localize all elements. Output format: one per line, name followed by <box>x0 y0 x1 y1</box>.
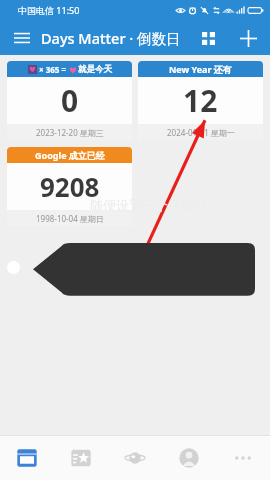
button[interactable]: Grid view <box>193 23 223 53</box>
staticText: 9208 <box>40 169 100 204</box>
button[interactable]: Google 成立已经 <box>7 147 132 226</box>
staticText: × 365 = <box>39 64 69 75</box>
button[interactable]: Menu <box>8 24 36 52</box>
staticText: 2023-12-20 星期三 <box>36 127 104 138</box>
staticText: 12 <box>183 80 218 121</box>
button[interactable]: More <box>216 436 270 480</box>
staticText: New Year 还有 <box>169 63 232 75</box>
button[interactable]: Calendar <box>0 436 54 480</box>
staticText: 随便设置一个目标日 <box>90 197 207 213</box>
staticText: 中国电信 11:50 <box>18 4 80 16</box>
staticText: Days Matter · 倒数日 <box>41 28 181 48</box>
button[interactable]: New Year 还有 <box>138 61 263 140</box>
staticText: 2024-01-01 星期一 <box>167 127 235 138</box>
button[interactable]: Favorites <box>54 436 108 480</box>
staticText: Google 成立已经 <box>35 149 105 161</box>
button[interactable]: Discover <box>108 436 162 480</box>
button[interactable]: Add <box>232 22 264 54</box>
staticText: 1998-10-04 星期日 <box>36 213 104 224</box>
button[interactable]: × 365 = <box>7 61 132 140</box>
button[interactable]: Profile <box>162 436 216 480</box>
staticText: 就是今天 <box>78 64 112 75</box>
staticText: 0 <box>61 80 79 121</box>
